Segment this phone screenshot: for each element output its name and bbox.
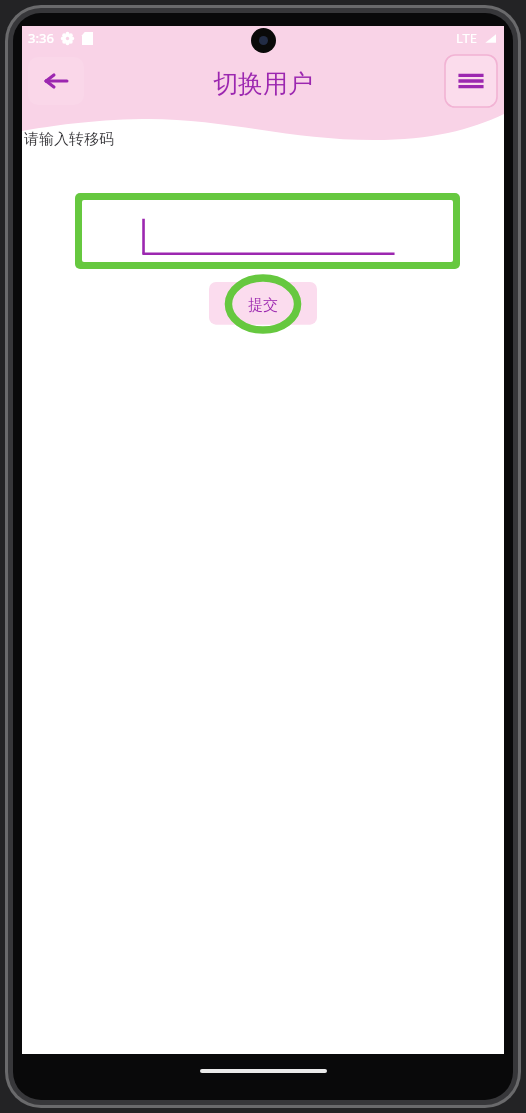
staticText: 3:36 <box>28 29 54 47</box>
button[interactable]: Menu <box>445 55 497 107</box>
staticText: 请输入转移码 <box>24 130 114 149</box>
staticText: LTE <box>456 29 478 47</box>
button[interactable]: 提交 <box>209 282 317 334</box>
staticText: 提交 <box>248 296 278 315</box>
button[interactable]: Back <box>28 57 84 105</box>
button[interactable] <box>75 193 460 269</box>
staticText: 切换用户 <box>213 68 313 99</box>
